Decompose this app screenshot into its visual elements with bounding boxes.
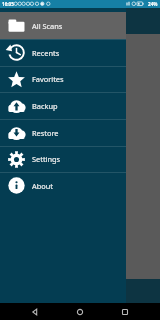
button[interactable]: All Scans [0,12,126,39]
button[interactable]: Recents [0,39,126,66]
button[interactable]: Back [27,304,43,320]
staticText: 24% [148,1,158,7]
button[interactable]: About [0,172,126,199]
staticText: Settings [32,154,61,164]
staticText: Backup [32,101,58,111]
staticText: Restore [32,128,59,138]
staticText: All Scans [32,21,63,31]
staticText: Recents [32,48,60,58]
button[interactable]: Home [72,304,88,320]
button[interactable]: Favorites [0,66,126,92]
button[interactable]: Settings [0,146,126,172]
staticText: 16:05 [2,1,14,7]
button[interactable]: Recent apps [117,304,133,320]
button[interactable]: Backup [0,92,126,119]
staticText: Favorites [32,74,64,84]
staticText: About [32,181,53,191]
button[interactable]: Restore [0,119,126,146]
